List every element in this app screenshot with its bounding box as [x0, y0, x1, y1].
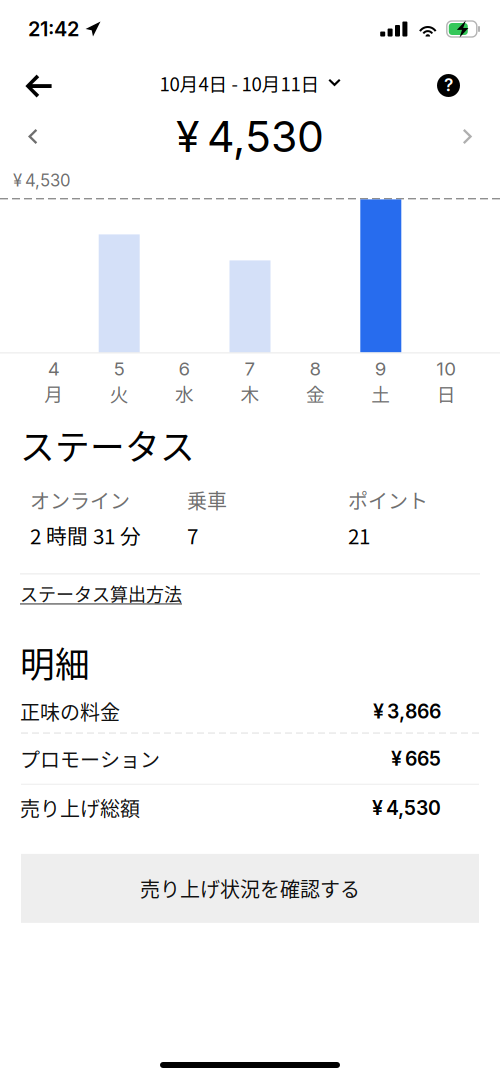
staticText: オンライン: [30, 485, 130, 514]
staticText: ¥ 665: [391, 747, 441, 770]
button[interactable]: ステータス算出方法: [0, 574, 500, 612]
staticText: 21: [348, 520, 370, 550]
staticText: ステータス: [20, 420, 195, 470]
staticText: 9: [375, 357, 387, 380]
staticText: 7: [244, 357, 255, 380]
staticText: 火: [110, 380, 129, 407]
staticText: 5: [114, 357, 125, 380]
staticText: ¥ 4,530: [372, 796, 441, 820]
staticText: ポイント: [348, 485, 428, 514]
staticText: 6: [179, 357, 191, 380]
staticText: 日: [437, 380, 456, 407]
button[interactable]: Help: [423, 48, 500, 110]
staticText: 8: [309, 357, 321, 380]
staticText: プロモーション: [20, 744, 160, 773]
staticText: 正味の料金: [20, 697, 120, 726]
button[interactable]: 売り上げ状況を確認する: [21, 854, 479, 923]
staticText: 4: [48, 357, 60, 380]
button[interactable]: Previous week: [0, 110, 60, 163]
staticText: ¥ 4,530: [13, 170, 71, 191]
button[interactable]: Next week: [440, 110, 500, 163]
staticText: 金: [306, 380, 325, 407]
staticText: 10: [436, 357, 456, 380]
staticText: ステータス算出方法: [20, 580, 182, 606]
staticText: 2 時間 31 分: [30, 520, 141, 550]
staticText: 売り上げ総額: [20, 793, 140, 822]
staticText: ¥ 4,530: [176, 111, 324, 162]
staticText: 木: [240, 380, 259, 407]
staticText: 土: [371, 380, 390, 407]
button[interactable]: Back: [0, 48, 66, 110]
staticText: 売り上げ状況を確認する: [140, 874, 360, 903]
button[interactable]: 10月4日 - 10月11日: [143, 52, 356, 113]
staticText: 水: [175, 380, 194, 407]
staticText: 7: [187, 520, 198, 550]
staticText: ¥ 3,866: [373, 700, 441, 723]
staticText: 10月4日 - 10月11日: [159, 69, 319, 96]
staticText: 乗車: [187, 485, 227, 514]
staticText: 月: [44, 380, 63, 407]
staticText: 明細: [20, 637, 90, 687]
staticText: ?: [444, 74, 453, 95]
staticText: 21:42: [28, 17, 79, 41]
